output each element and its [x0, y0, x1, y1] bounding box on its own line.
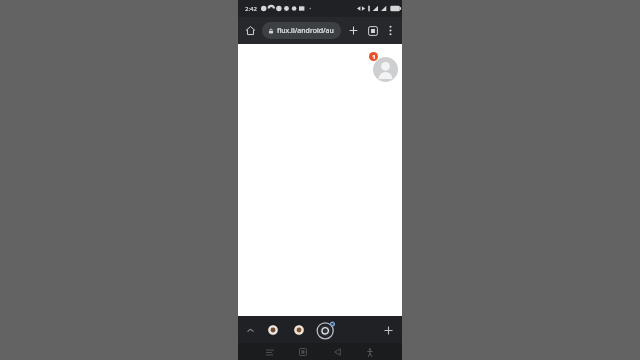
button[interactable]: Account — [368, 52, 398, 82]
button[interactable]: Recent apps — [262, 344, 278, 360]
staticText: 1 — [372, 53, 376, 61]
button[interactable]: More options — [382, 22, 399, 39]
button[interactable]: Current tab — [316, 320, 336, 340]
button[interactable]: Expand — [242, 322, 258, 338]
button[interactable]: Back — [329, 344, 345, 360]
staticText: 2:42 — [245, 5, 257, 13]
button[interactable]: New tab — [344, 21, 363, 40]
staticText: flux.li/android/au — [277, 26, 334, 36]
button[interactable]: Tab — [266, 323, 280, 337]
button[interactable]: flux.li/android/au — [262, 22, 341, 39]
button[interactable]: Tab switcher — [363, 21, 382, 40]
button[interactable]: Accessibility — [362, 344, 378, 360]
button[interactable]: Add tab — [379, 321, 397, 339]
button[interactable]: Home — [295, 344, 311, 360]
button[interactable]: Home — [241, 21, 260, 40]
button[interactable]: Tab — [292, 323, 306, 337]
